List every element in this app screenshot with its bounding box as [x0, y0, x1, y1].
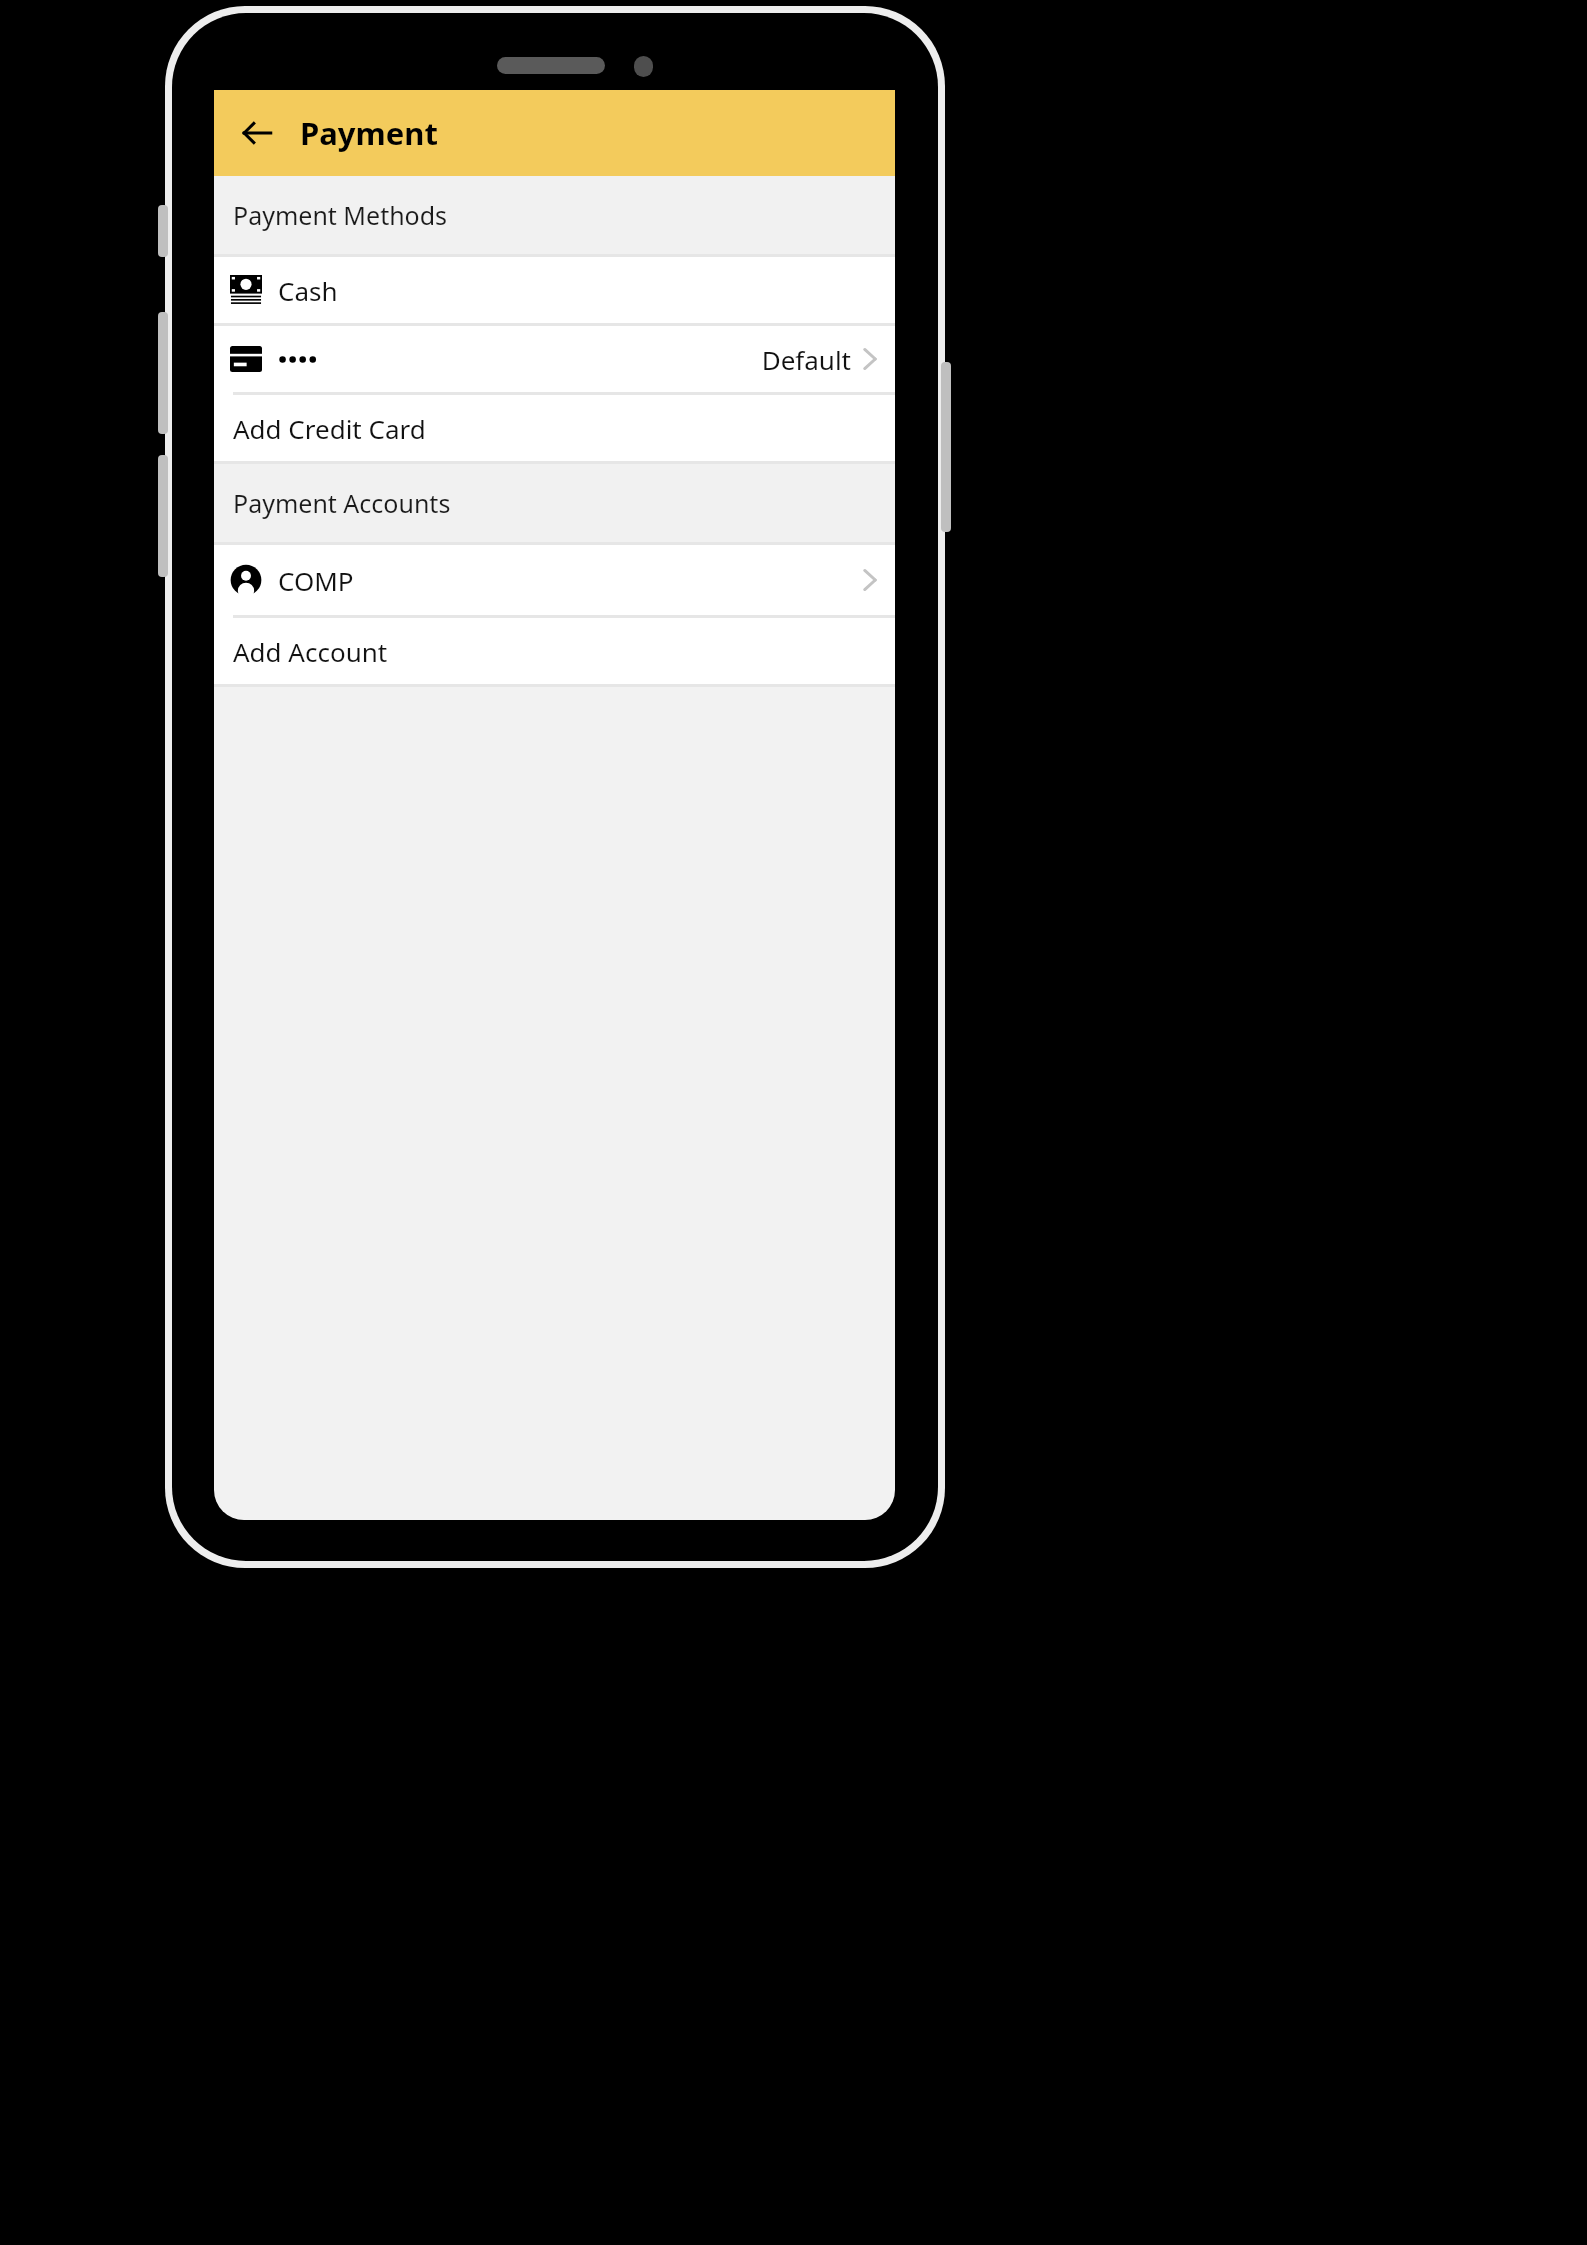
staticText: Payment Accounts	[233, 486, 451, 520]
staticText: Payment	[300, 112, 438, 154]
button[interactable]: Add Account	[214, 618, 895, 684]
staticText: Cash	[278, 273, 338, 308]
button[interactable]: Back	[228, 104, 286, 162]
staticText: Payment Methods	[233, 198, 448, 232]
button[interactable]: Default	[214, 326, 895, 392]
button[interactable]: COMP	[214, 545, 895, 615]
button[interactable]: Cash	[214, 257, 895, 323]
staticText: COMP	[278, 563, 354, 598]
button[interactable]: Add Credit Card	[214, 395, 895, 461]
staticText: Add Account	[233, 634, 388, 669]
staticText: Add Credit Card	[233, 411, 426, 446]
staticText: Default	[761, 342, 851, 377]
